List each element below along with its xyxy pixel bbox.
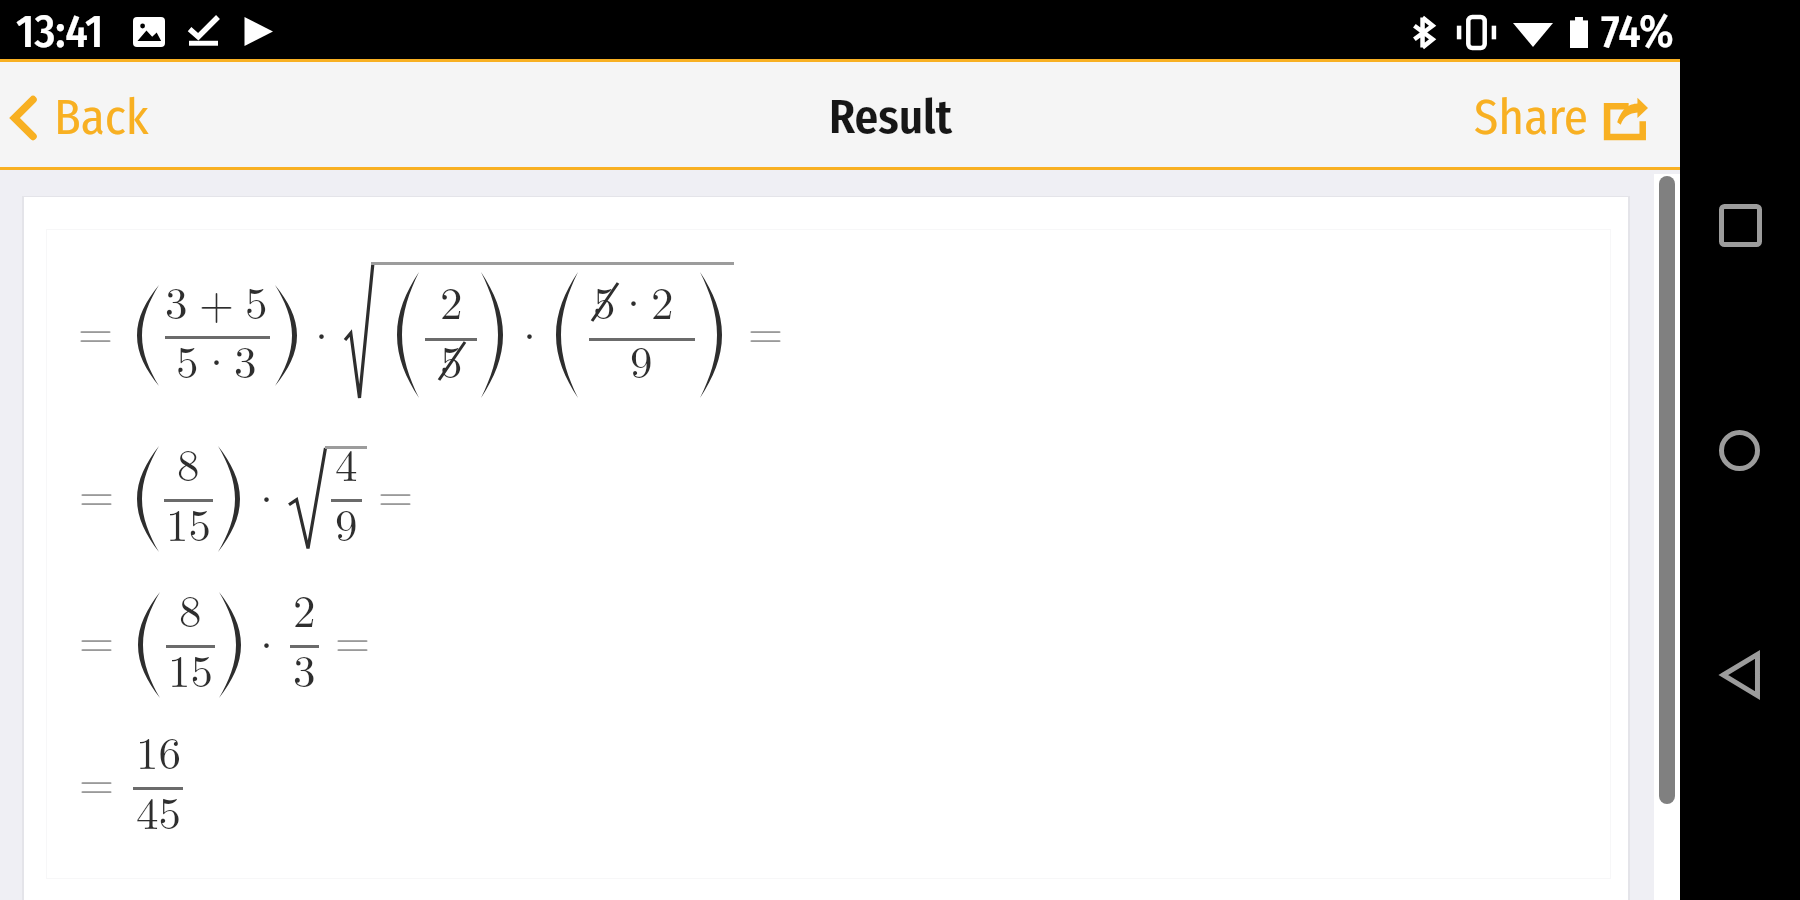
staticText: = [79, 460, 115, 524]
staticText: 15 [168, 636, 214, 700]
staticText: 3 [234, 327, 257, 391]
staticText: = [78, 297, 114, 361]
button[interactable]: Back [0, 68, 173, 161]
staticText: · [249, 610, 285, 674]
staticText: = [79, 748, 115, 812]
staticText: 13:41 [16, 5, 104, 59]
staticText: · [616, 268, 652, 332]
staticText: 5 [440, 327, 463, 391]
button[interactable]: Home [1719, 430, 1760, 471]
staticText: 2 [440, 268, 463, 332]
staticText: = [748, 297, 784, 361]
staticText: Share [1474, 88, 1589, 147]
staticText: 9 [335, 490, 358, 554]
staticText: 4 [335, 430, 358, 494]
staticText: + [199, 268, 235, 332]
staticText: 8 [179, 576, 202, 640]
staticText: · [512, 301, 548, 365]
staticText: 15 [166, 490, 212, 554]
staticText: 74% [1601, 5, 1674, 59]
staticText: 16 [136, 718, 182, 782]
staticText: · [199, 327, 235, 391]
staticText: 9 [630, 327, 653, 391]
staticText: 3 [293, 636, 316, 700]
staticText: 5 [593, 268, 616, 332]
staticText: 2 [651, 268, 674, 332]
staticText: · [249, 464, 285, 528]
staticText: 5 [176, 327, 199, 391]
staticText: · [304, 301, 340, 365]
button[interactable]: Share [1450, 68, 1680, 161]
staticText: = [79, 606, 115, 670]
staticText: 45 [136, 778, 182, 842]
staticText: Result [829, 89, 953, 145]
staticText: Back [54, 88, 149, 147]
staticText: = [335, 606, 371, 670]
staticText: 3 [165, 268, 188, 332]
staticText: = [378, 460, 414, 524]
staticText: 2 [293, 576, 316, 640]
staticText: 5 [245, 268, 268, 332]
other: Share [1604, 97, 1648, 139]
staticText: 8 [177, 430, 200, 494]
button[interactable]: Recent apps [1719, 204, 1762, 247]
button[interactable]: Back [1721, 653, 1759, 697]
